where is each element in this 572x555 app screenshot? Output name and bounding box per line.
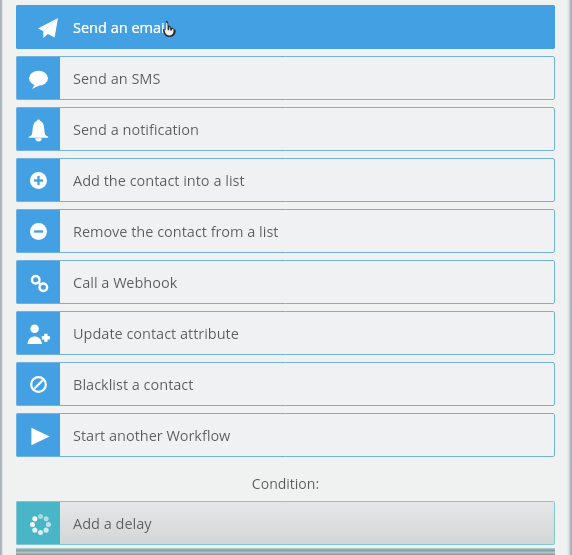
button[interactable]: Start another Workflow — [16, 413, 555, 457]
button[interactable]: Send a notification — [16, 107, 555, 151]
staticText: Remove the contact from a list — [73, 222, 279, 242]
staticText: Call a Webhook — [73, 273, 178, 293]
staticText: Send an email — [73, 18, 169, 38]
button[interactable]: Call a Webhook — [16, 260, 555, 304]
staticText: Blacklist a contact — [73, 375, 194, 395]
staticText: Start another Workflow — [73, 426, 231, 446]
staticText: Add the contact into a list — [73, 171, 245, 191]
staticText: Update contact attribute — [73, 324, 239, 344]
staticText: Condition: — [16, 474, 555, 493]
staticText: Send an SMS — [73, 69, 161, 89]
button[interactable]: Update contact attribute — [16, 311, 555, 355]
button[interactable]: Send an email — [16, 5, 555, 49]
button[interactable]: Remove the contact from a list — [16, 209, 555, 253]
button[interactable]: Send an SMS — [16, 56, 555, 100]
button[interactable]: Stop the Workflow — [16, 548, 555, 555]
button[interactable]: Add the contact into a list — [16, 158, 555, 202]
staticText: Add a delay — [73, 514, 152, 534]
button[interactable]: Add a delay — [16, 501, 555, 545]
staticText: Send a notification — [73, 120, 199, 140]
button[interactable]: Blacklist a contact — [16, 362, 555, 406]
